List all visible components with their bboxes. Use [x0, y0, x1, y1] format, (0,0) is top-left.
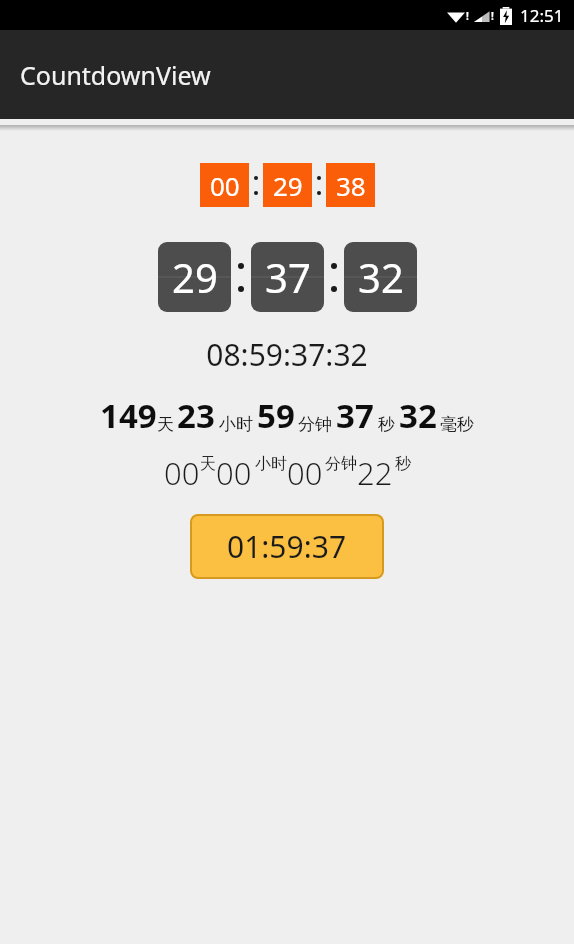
staticText: 秒 — [395, 454, 411, 474]
staticText: 12:51 — [520, 4, 564, 27]
staticText: 天 — [200, 454, 216, 474]
staticText: 小时 — [255, 454, 287, 474]
staticText: 38 — [336, 168, 366, 203]
staticText: 分钟 — [325, 454, 357, 474]
staticText: 08:59:37:32 — [0, 334, 574, 375]
staticText: 00 — [210, 168, 240, 203]
button[interactable]: 01:59:37 — [190, 514, 384, 579]
staticText: ! — [491, 9, 494, 23]
staticText: 天 — [157, 414, 174, 435]
staticText: 37 — [336, 393, 374, 438]
staticText: 01:59:37 — [227, 526, 347, 567]
staticText: CountdownView — [20, 58, 211, 92]
staticText: 00 — [216, 452, 252, 494]
staticText: 小时 — [219, 414, 253, 435]
staticText: 32 — [399, 393, 437, 438]
staticText: 37 — [265, 250, 311, 304]
staticText: 23 — [177, 393, 215, 438]
staticText: 毫秒 — [440, 414, 474, 435]
staticText: 22 — [357, 452, 393, 494]
staticText: 149 — [100, 393, 157, 438]
staticText: 59 — [257, 393, 295, 438]
staticText: ! — [466, 9, 469, 23]
staticText: 00 — [164, 452, 200, 494]
staticText: 29 — [172, 250, 218, 304]
staticText: 秒 — [378, 414, 395, 435]
staticText: 32 — [358, 250, 404, 304]
staticText: 00 — [287, 452, 323, 494]
staticText: 分钟 — [298, 414, 332, 435]
staticText: 29 — [273, 168, 303, 203]
